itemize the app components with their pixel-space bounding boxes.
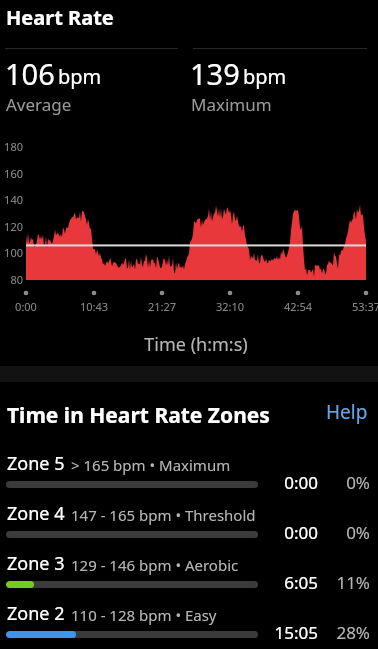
staticText: bpm: [243, 63, 287, 90]
staticText: 0%: [332, 521, 370, 544]
button[interactable]: Zone 5: [0, 447, 378, 497]
staticText: Zone 2: [7, 601, 65, 626]
staticText: Time (h:m:s): [26, 332, 366, 357]
staticText: 147 - 165 bpm • Threshold: [71, 505, 256, 525]
staticText: 10:43: [76, 299, 112, 314]
staticText: 0:00: [270, 471, 318, 494]
staticText: 120: [1, 219, 23, 234]
staticText: Heart Rate: [6, 4, 114, 31]
staticText: 106: [5, 54, 55, 93]
staticText: 15:05: [270, 621, 318, 644]
staticText: Help: [326, 399, 368, 425]
staticText: Zone 5: [7, 451, 65, 476]
staticText: > 165 bpm • Maximum: [71, 455, 231, 475]
staticText: 21:27: [144, 299, 180, 314]
staticText: 139: [190, 54, 240, 93]
staticText: 180: [1, 139, 23, 154]
staticText: 80: [1, 272, 23, 287]
staticText: bpm: [58, 63, 102, 90]
button[interactable]: Zone 4: [0, 497, 378, 547]
staticText: 0:00: [8, 299, 44, 314]
staticText: 0%: [332, 471, 370, 494]
button[interactable]: Zone 2: [0, 597, 378, 647]
staticText: 28%: [332, 621, 370, 644]
staticText: Zone 4: [7, 501, 65, 526]
staticText: 53:37: [348, 299, 378, 314]
staticText: 100: [1, 245, 23, 260]
staticText: Maximum: [191, 93, 272, 116]
staticText: 11%: [332, 571, 370, 594]
staticText: Average: [6, 93, 72, 116]
staticText: 32:10: [212, 299, 248, 314]
staticText: 42:54: [280, 299, 316, 314]
button[interactable]: Help: [321, 396, 373, 428]
staticText: Zone 3: [7, 551, 65, 576]
button[interactable]: Zone 3: [0, 547, 378, 597]
staticText: 140: [1, 192, 23, 207]
staticText: 129 - 146 bpm • Aerobic: [71, 555, 239, 575]
staticText: 160: [1, 166, 23, 181]
staticText: 110 - 128 bpm • Easy: [71, 605, 217, 625]
staticText: 6:05: [270, 571, 318, 594]
staticText: Time in Heart Rate Zones: [7, 401, 270, 430]
staticText: 0:00: [270, 521, 318, 544]
